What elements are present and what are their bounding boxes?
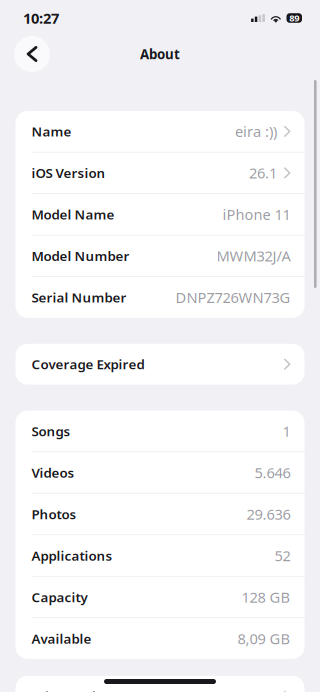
- staticText: Songs: [31, 422, 70, 440]
- staticText: 89: [289, 12, 299, 24]
- staticText: Model Name: [31, 205, 114, 223]
- button[interactable]: Videos: [15, 452, 304, 493]
- button[interactable]: Coverage Expired: [15, 344, 304, 385]
- button[interactable]: Songs: [15, 411, 304, 451]
- staticText: Videos: [31, 464, 74, 481]
- staticText: Name: [31, 122, 71, 140]
- button[interactable]: Advanced: [15, 676, 304, 692]
- staticText: 29.636: [246, 504, 290, 524]
- staticText: 128 GB: [241, 587, 290, 607]
- staticText: 10:27: [23, 8, 59, 28]
- staticText: Photos: [31, 505, 76, 523]
- staticText: iPhone 11: [222, 205, 290, 224]
- staticText: 26.1: [249, 163, 277, 183]
- button[interactable]: Photos: [15, 494, 304, 534]
- staticText: Advanced: [31, 687, 95, 692]
- staticText: About: [140, 45, 180, 63]
- button[interactable]: Available: [15, 618, 304, 659]
- button[interactable]: Name: [15, 111, 304, 152]
- staticText: 5.646: [254, 463, 290, 482]
- staticText: Capacity: [31, 588, 87, 606]
- staticText: Serial Number: [31, 288, 126, 306]
- button[interactable]: Serial Number: [15, 277, 304, 318]
- staticText: DNPZ726WN73G: [175, 288, 290, 307]
- staticText: Applications: [31, 547, 112, 564]
- staticText: eira :)): [235, 122, 277, 141]
- staticText: Available: [31, 630, 91, 647]
- staticText: iOS Version: [31, 164, 105, 182]
- button[interactable]: Model Name: [15, 194, 304, 235]
- staticText: 1: [282, 421, 290, 441]
- button[interactable]: Back: [14, 36, 50, 72]
- staticText: Coverage Expired: [31, 355, 144, 373]
- staticText: Model Number: [31, 247, 129, 265]
- staticText: MWM32J/A: [216, 246, 290, 266]
- button[interactable]: iOS Version: [15, 152, 304, 193]
- staticText: 8,09 GB: [237, 629, 290, 648]
- staticText: 52: [274, 546, 290, 565]
- button[interactable]: Applications: [15, 535, 304, 576]
- button[interactable]: Capacity: [15, 577, 304, 617]
- button[interactable]: Model Number: [15, 235, 304, 276]
